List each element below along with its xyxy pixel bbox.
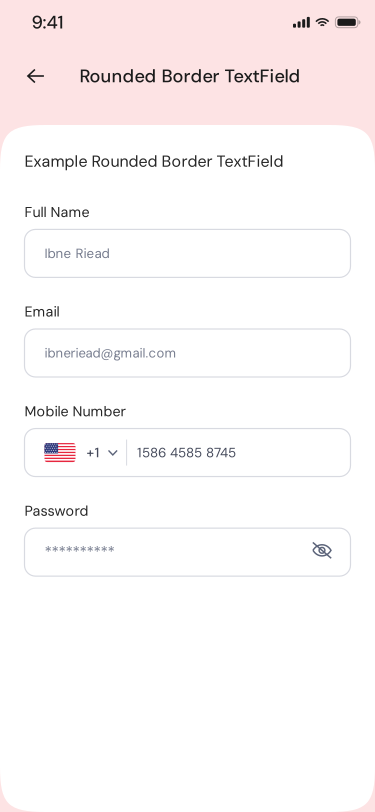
staticText: Rounded Border TextField (79, 64, 300, 88)
staticText: 1586 4585 8745 (137, 444, 236, 461)
button[interactable]: ibneriead@gmail.com (24, 329, 350, 377)
staticText: Example Rounded Border TextField (24, 151, 283, 172)
staticText: ibneriead@gmail.com (44, 344, 176, 361)
staticText: Mobile Number (24, 402, 125, 421)
staticText: ********** (44, 542, 114, 562)
staticText: Password (24, 502, 88, 520)
staticText: 9:41 (31, 10, 63, 34)
staticText: Full Name (24, 203, 89, 221)
staticText: Email (24, 302, 59, 321)
button[interactable]: +1 (24, 429, 350, 477)
staticText: Ibne Riead (44, 245, 109, 262)
button[interactable]: ********** (24, 528, 350, 576)
button[interactable]: Ibne Riead (24, 229, 350, 277)
staticText: +1 (86, 444, 99, 461)
button[interactable]: Back (14, 57, 57, 94)
